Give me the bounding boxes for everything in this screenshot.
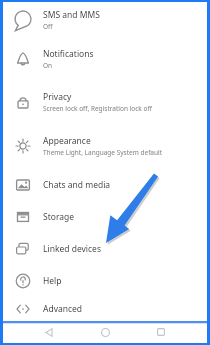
staticText: Appearance: [43, 135, 91, 147]
button[interactable]: SMS and MMS: [3, 2, 207, 37]
button[interactable]: Notifications: [3, 37, 207, 80]
staticText: On: [43, 61, 53, 70]
button[interactable]: Storage: [3, 201, 207, 233]
button[interactable]: Chats and media: [3, 168, 207, 201]
staticText: Storage: [43, 211, 75, 223]
staticText: Help: [43, 275, 62, 287]
button[interactable]: Appearance: [3, 124, 207, 168]
staticText: Advanced: [43, 303, 83, 315]
staticText: Notifications: [43, 48, 94, 60]
button[interactable]: Advanced: [3, 297, 207, 321]
staticText: Off: [43, 22, 53, 31]
staticText: Chats and media: [43, 179, 111, 191]
button[interactable]: Privacy: [3, 80, 207, 124]
button[interactable]: Home: [95, 322, 115, 342]
staticText: Privacy: [43, 91, 72, 103]
staticText: SMS and MMS: [43, 9, 100, 21]
staticText: Linked devices: [43, 243, 101, 255]
button[interactable]: Back: [39, 322, 59, 342]
staticText: Screen lock off, Registration lock off: [43, 104, 152, 113]
button[interactable]: Help: [3, 265, 207, 297]
staticText: Theme Light, Language System default: [43, 148, 163, 157]
button[interactable]: Linked devices: [3, 233, 207, 265]
button[interactable]: Recent apps: [151, 322, 171, 342]
